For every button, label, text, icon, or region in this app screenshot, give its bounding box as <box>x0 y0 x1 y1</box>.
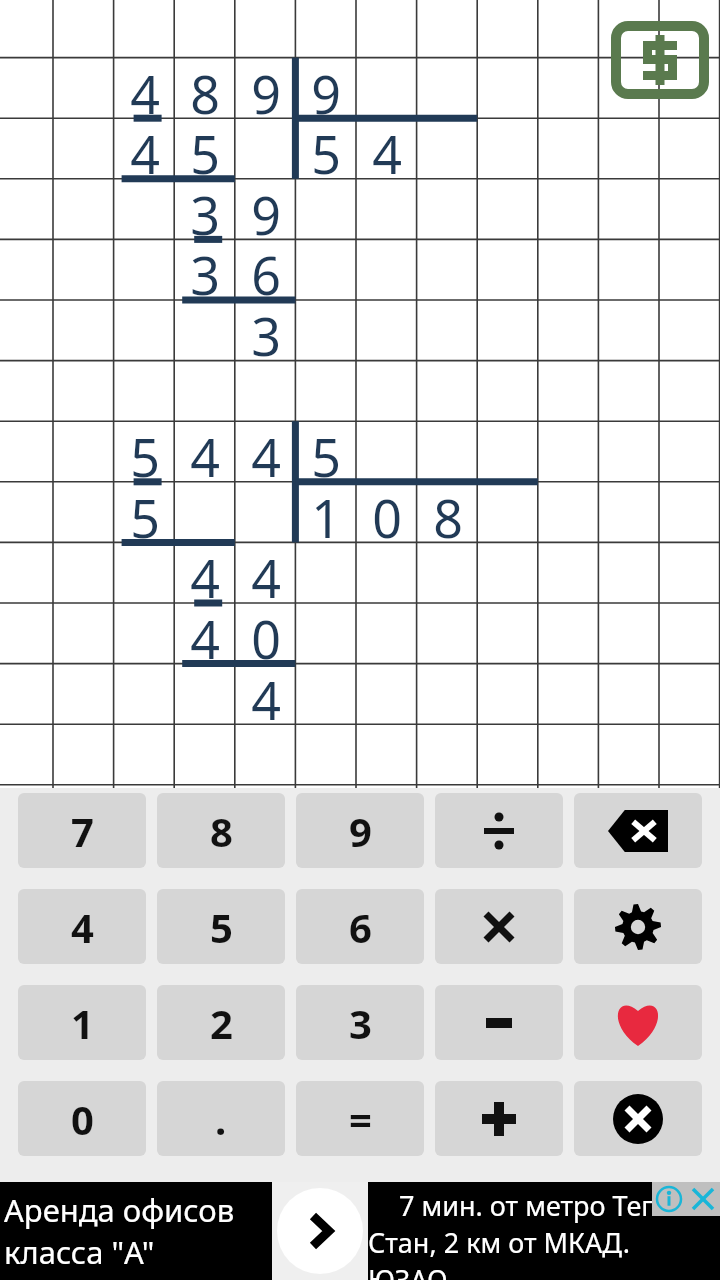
staticText: 4 <box>190 603 220 664</box>
staticText: 5 <box>311 421 341 482</box>
staticText: 4 <box>251 421 281 482</box>
staticText: 4 <box>130 118 160 179</box>
staticText: 3 <box>349 996 372 1050</box>
button[interactable] <box>435 1081 563 1156</box>
button[interactable]: 2 <box>157 985 285 1060</box>
button[interactable]: 5 <box>157 889 285 964</box>
staticText: 9 <box>311 58 341 119</box>
staticText: . <box>215 1092 227 1146</box>
staticText: 0 <box>372 482 402 543</box>
staticText: 4 <box>251 664 281 725</box>
staticText: 3 <box>190 179 220 240</box>
staticText: Стан, 2 км от МКАД. ЮЗАО. <box>368 1224 720 1280</box>
staticText: 9 <box>349 804 372 858</box>
staticText: 5 <box>311 118 341 179</box>
staticText: 4 <box>251 542 281 603</box>
button[interactable]: Аренда офисов <box>0 1182 720 1280</box>
staticText: 5 <box>210 900 233 954</box>
staticText: 9 <box>251 58 281 119</box>
staticText: 7 мин. от метро Тепль <box>399 1187 689 1224</box>
button[interactable]: 0 <box>18 1081 146 1156</box>
staticText: 8 <box>433 482 463 543</box>
staticText: 3 <box>190 239 220 300</box>
button[interactable]: 6 <box>296 889 424 964</box>
staticText: Аренда офисов <box>4 1189 235 1231</box>
button[interactable]: . <box>157 1081 285 1156</box>
button[interactable]: 7 <box>18 793 146 868</box>
staticText: 4 <box>190 542 220 603</box>
staticText: 1 <box>71 996 94 1050</box>
button[interactable]: 8 <box>157 793 285 868</box>
staticText: 3 <box>251 300 281 361</box>
button[interactable]: Buy premium <box>611 21 709 99</box>
staticText: = <box>349 1092 372 1146</box>
button[interactable]: Backspace <box>574 793 702 868</box>
button[interactable]: 1 <box>18 985 146 1060</box>
button[interactable]: 9 <box>296 793 424 868</box>
button[interactable]: Ad info <box>652 1182 686 1216</box>
staticText: 7 <box>71 804 94 858</box>
button[interactable]: Close ad <box>686 1182 720 1216</box>
button[interactable]: Favorite <box>574 985 702 1060</box>
staticText: 1 <box>311 482 341 543</box>
staticText: 5 <box>130 421 160 482</box>
button[interactable]: 3 <box>296 985 424 1060</box>
staticText: 8 <box>190 58 220 119</box>
staticText: 8 <box>210 804 233 858</box>
staticText: 2 <box>210 996 233 1050</box>
button[interactable]: Close <box>574 1081 702 1156</box>
staticText: 0 <box>71 1092 94 1146</box>
staticText: 5 <box>190 118 220 179</box>
staticText: 0 <box>251 603 281 664</box>
staticText: 6 <box>349 900 372 954</box>
button[interactable]: = <box>296 1081 424 1156</box>
staticText: 4 <box>190 421 220 482</box>
button[interactable] <box>435 793 563 868</box>
button[interactable] <box>435 985 563 1060</box>
button[interactable]: Settings <box>574 889 702 964</box>
staticText: 6 <box>251 239 281 300</box>
staticText: 4 <box>71 900 94 954</box>
staticText: 4 <box>372 118 402 179</box>
button[interactable]: 4 <box>18 889 146 964</box>
staticText: 4 <box>130 58 160 119</box>
button[interactable] <box>435 889 563 964</box>
staticText: класса "A" <box>4 1231 155 1273</box>
staticText: 9 <box>251 179 281 240</box>
staticText: 5 <box>130 482 160 543</box>
